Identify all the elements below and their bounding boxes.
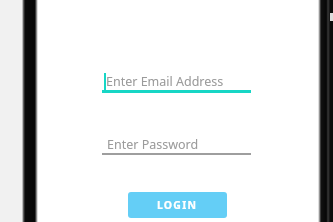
staticText: Enter Password bbox=[107, 136, 199, 153]
button[interactable]: LOGIN bbox=[128, 192, 227, 218]
staticText: LOGIN bbox=[157, 198, 198, 212]
button[interactable]: Enter Email Address bbox=[102, 66, 251, 93]
button[interactable]: Enter Password bbox=[102, 130, 251, 155]
staticText: Enter Email Address bbox=[106, 73, 224, 90]
